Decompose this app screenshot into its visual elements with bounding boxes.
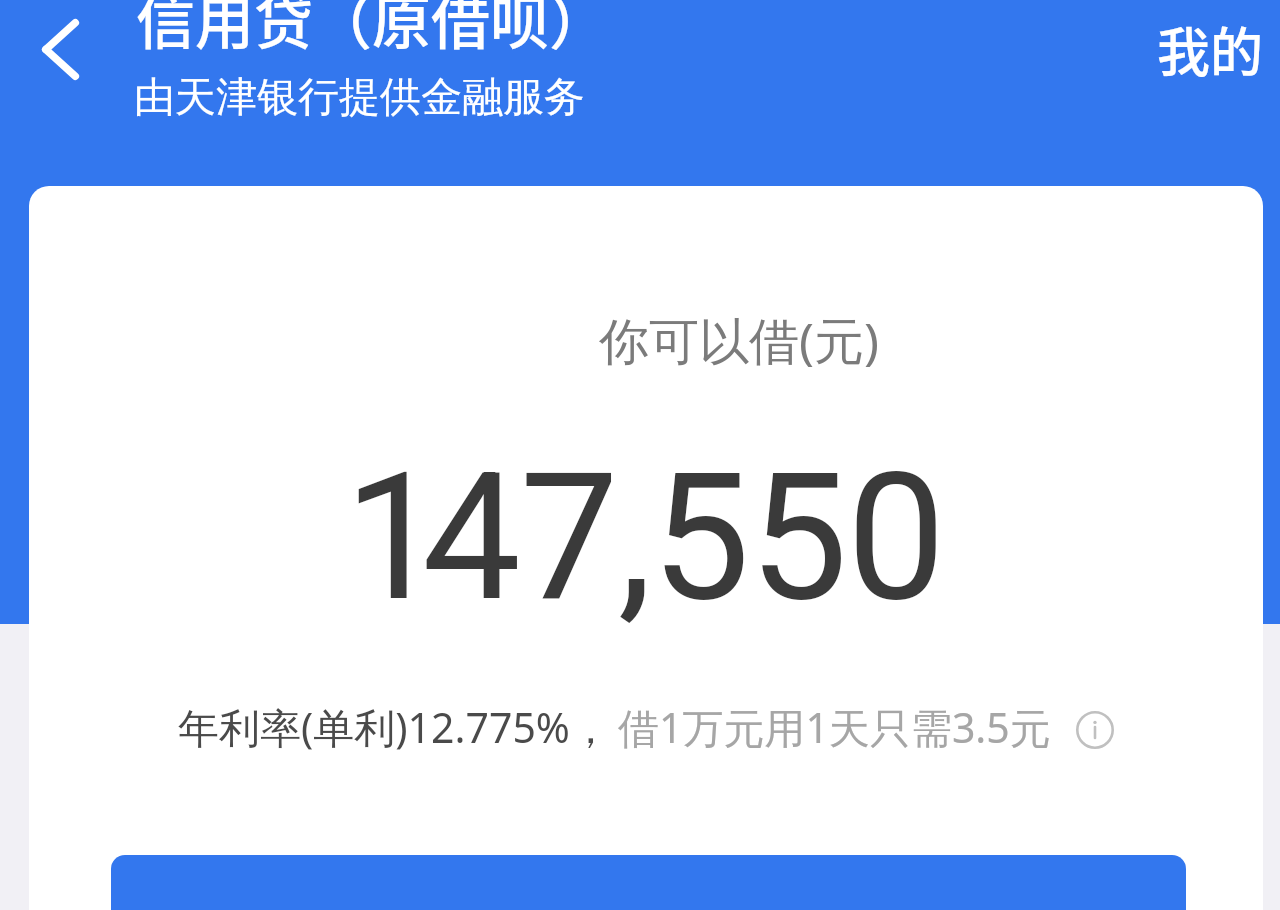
button[interactable]: 立即借钱 bbox=[111, 855, 1186, 910]
staticText: 1 bbox=[344, 435, 422, 641]
staticText: 年利率(单利)12.775%， bbox=[178, 699, 611, 755]
staticText: 你可以借(元) bbox=[599, 306, 879, 374]
staticText: 由天津银行提供金融服务 bbox=[134, 72, 585, 124]
button[interactable]: Back bbox=[14, 4, 104, 96]
staticText: 借1万元用1天只需3.5元 bbox=[618, 699, 1051, 755]
staticText: 信用贷（原借呗） bbox=[136, 0, 609, 61]
button[interactable]: Rate details bbox=[1073, 708, 1117, 752]
staticText: 47,550 bbox=[422, 435, 945, 641]
staticText: 我的 bbox=[1157, 11, 1263, 88]
button[interactable]: 我的 bbox=[1151, 7, 1269, 92]
